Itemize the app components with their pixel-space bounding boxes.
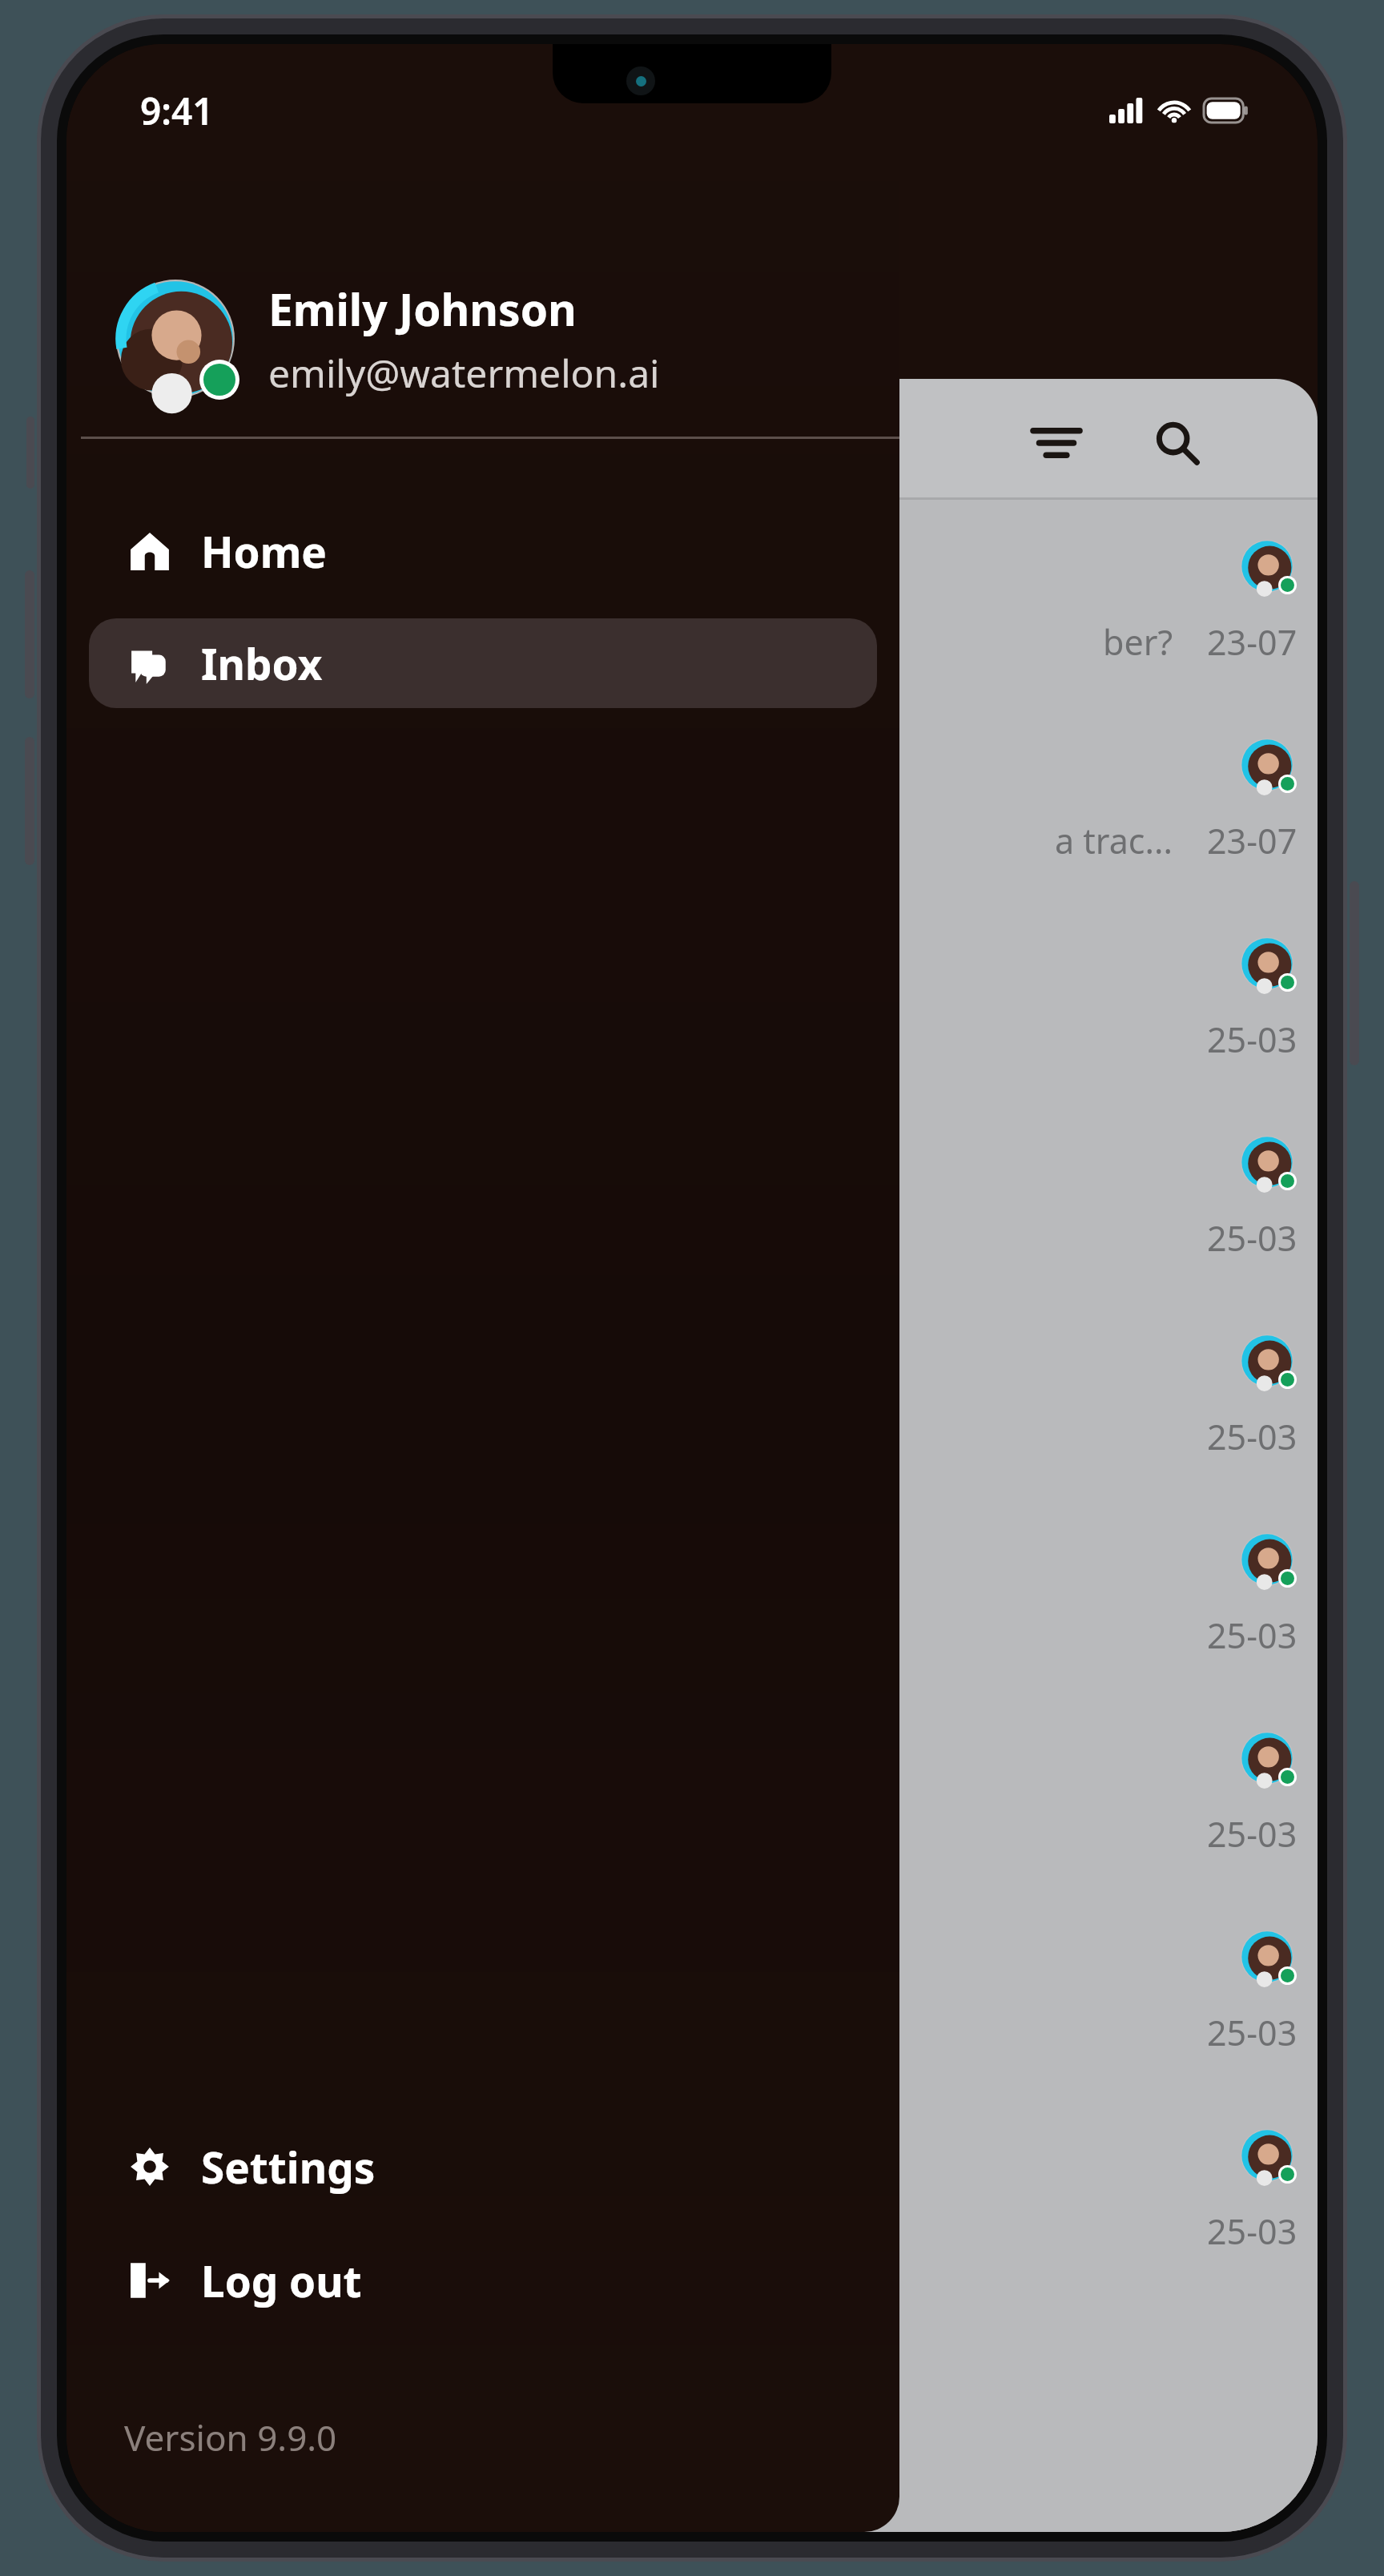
button[interactable]: 25-03 — [469, 1306, 1318, 1504]
staticText: 23-07 — [1207, 817, 1297, 864]
button[interactable]: 23-07 — [469, 710, 1318, 908]
staticText: 25-03 — [1207, 2009, 1297, 2056]
staticText: Emily Johnson — [268, 279, 577, 339]
button[interactable]: 23-07 — [469, 511, 1318, 710]
button[interactable]: Home — [89, 506, 877, 596]
button[interactable]: 25-03 — [469, 1703, 1318, 1902]
staticText: emily@watermelon.ai — [268, 347, 660, 399]
button[interactable]: 25-03 — [469, 1504, 1318, 1703]
staticText: 25-03 — [1207, 1413, 1297, 1460]
button[interactable]: 25-03 — [469, 1902, 1318, 2100]
staticText: 9:41 — [140, 86, 214, 136]
button[interactable]: Emily Johnson — [66, 259, 899, 419]
button[interactable]: 25-03 — [469, 908, 1318, 1107]
staticText: 25-03 — [1207, 1214, 1297, 1262]
staticText: 25-03 — [1207, 1612, 1297, 1659]
button[interactable]: Search — [1140, 406, 1213, 480]
staticText: 25-03 — [1207, 2208, 1297, 2255]
staticText: Home — [201, 522, 327, 580]
staticText: Version 9.9.0 — [124, 2413, 337, 2461]
button[interactable]: Filter — [1020, 406, 1093, 480]
button[interactable]: 25-03 — [469, 2100, 1318, 2299]
staticText: ber? — [1103, 618, 1173, 666]
staticText: Log out — [201, 2252, 362, 2309]
button[interactable]: Inbox — [89, 618, 877, 708]
button[interactable]: 25-03 — [469, 1107, 1318, 1306]
staticText: 25-03 — [1207, 1016, 1297, 1063]
staticText: 25-03 — [1207, 1810, 1297, 1858]
staticText: 23-07 — [1207, 618, 1297, 666]
staticText: a trac... — [1055, 817, 1173, 864]
staticText: Inbox — [201, 634, 323, 692]
button[interactable]: Log out — [89, 2236, 877, 2325]
staticText: Settings — [201, 2138, 376, 2196]
button[interactable]: Settings — [89, 2122, 877, 2212]
